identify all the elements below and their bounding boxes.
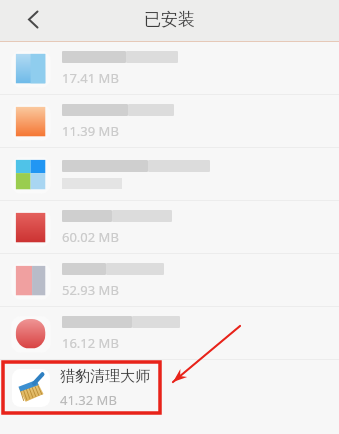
button[interactable]: 16.12 MB — [0, 307, 339, 360]
button[interactable]: 52.93 MB — [0, 254, 339, 307]
button[interactable]: Back — [0, 0, 44, 41]
staticText: 已安装 — [144, 9, 195, 30]
button[interactable]: 60.02 MB — [0, 201, 339, 254]
staticText: 11.39 MB — [62, 122, 119, 140]
staticText: 41.32 MB — [60, 391, 117, 409]
staticText: 52.93 MB — [62, 281, 119, 299]
staticText: 猎豹清理大师 — [60, 367, 150, 386]
button[interactable] — [0, 148, 339, 201]
staticText: 17.41 MB — [62, 69, 119, 87]
button[interactable]: 11.39 MB — [0, 95, 339, 148]
staticText: 16.12 MB — [62, 334, 119, 352]
staticText: 60.02 MB — [62, 228, 119, 246]
button[interactable]: 猎豹清理大师 — [0, 360, 339, 415]
button[interactable]: 17.41 MB — [0, 42, 339, 95]
